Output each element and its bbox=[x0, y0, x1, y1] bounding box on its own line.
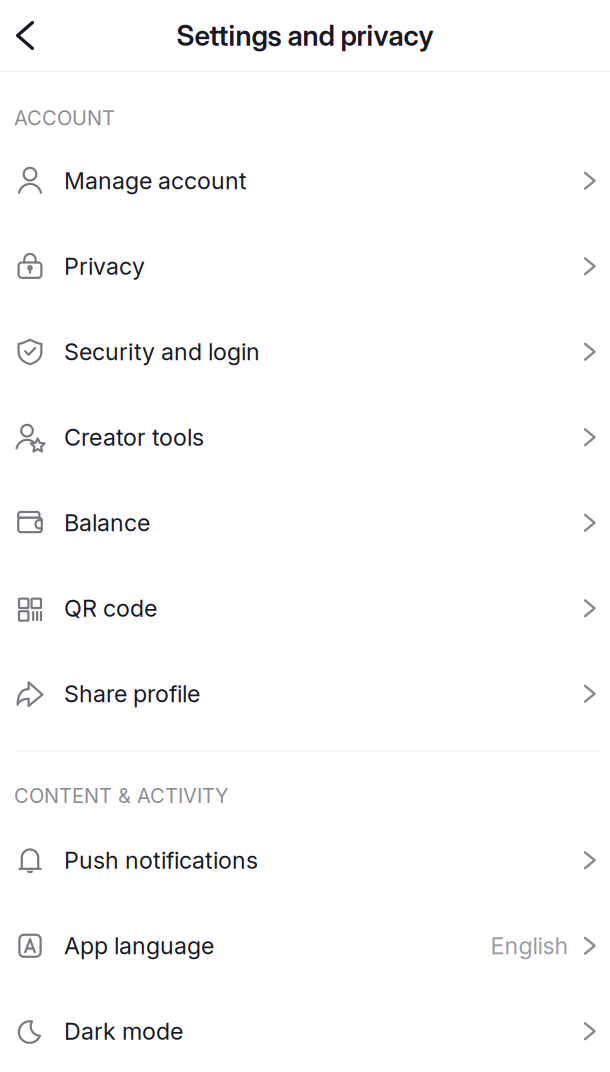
staticText: QR code bbox=[64, 594, 157, 622]
button[interactable]: Balance bbox=[0, 480, 610, 565]
button[interactable]: Push notifications bbox=[0, 817, 610, 903]
button[interactable]: Back bbox=[0, 0, 47, 71]
button[interactable]: Privacy bbox=[0, 223, 610, 309]
staticText: ACCOUNT bbox=[14, 106, 115, 130]
button[interactable]: Creator tools bbox=[0, 394, 610, 480]
button[interactable]: QR code bbox=[0, 565, 610, 651]
staticText: Settings and privacy bbox=[176, 19, 433, 52]
button[interactable]: Manage account bbox=[0, 138, 610, 223]
staticText: Security and login bbox=[64, 338, 260, 366]
staticText: Share profile bbox=[64, 680, 200, 708]
staticText: App language bbox=[64, 932, 214, 960]
staticText: Balance bbox=[64, 509, 150, 537]
button[interactable]: App language bbox=[0, 903, 610, 988]
staticText: Manage account bbox=[64, 167, 247, 195]
staticText: Privacy bbox=[64, 252, 145, 280]
staticText: Dark mode bbox=[64, 1017, 183, 1045]
button[interactable]: Security and login bbox=[0, 309, 610, 394]
button[interactable]: Dark mode bbox=[0, 988, 610, 1072]
staticText: English bbox=[491, 932, 569, 960]
button[interactable]: Share profile bbox=[0, 651, 610, 736]
staticText: Push notifications bbox=[64, 846, 258, 874]
staticText: Creator tools bbox=[64, 423, 204, 451]
staticText: CONTENT & ACTIVITY bbox=[14, 783, 229, 808]
